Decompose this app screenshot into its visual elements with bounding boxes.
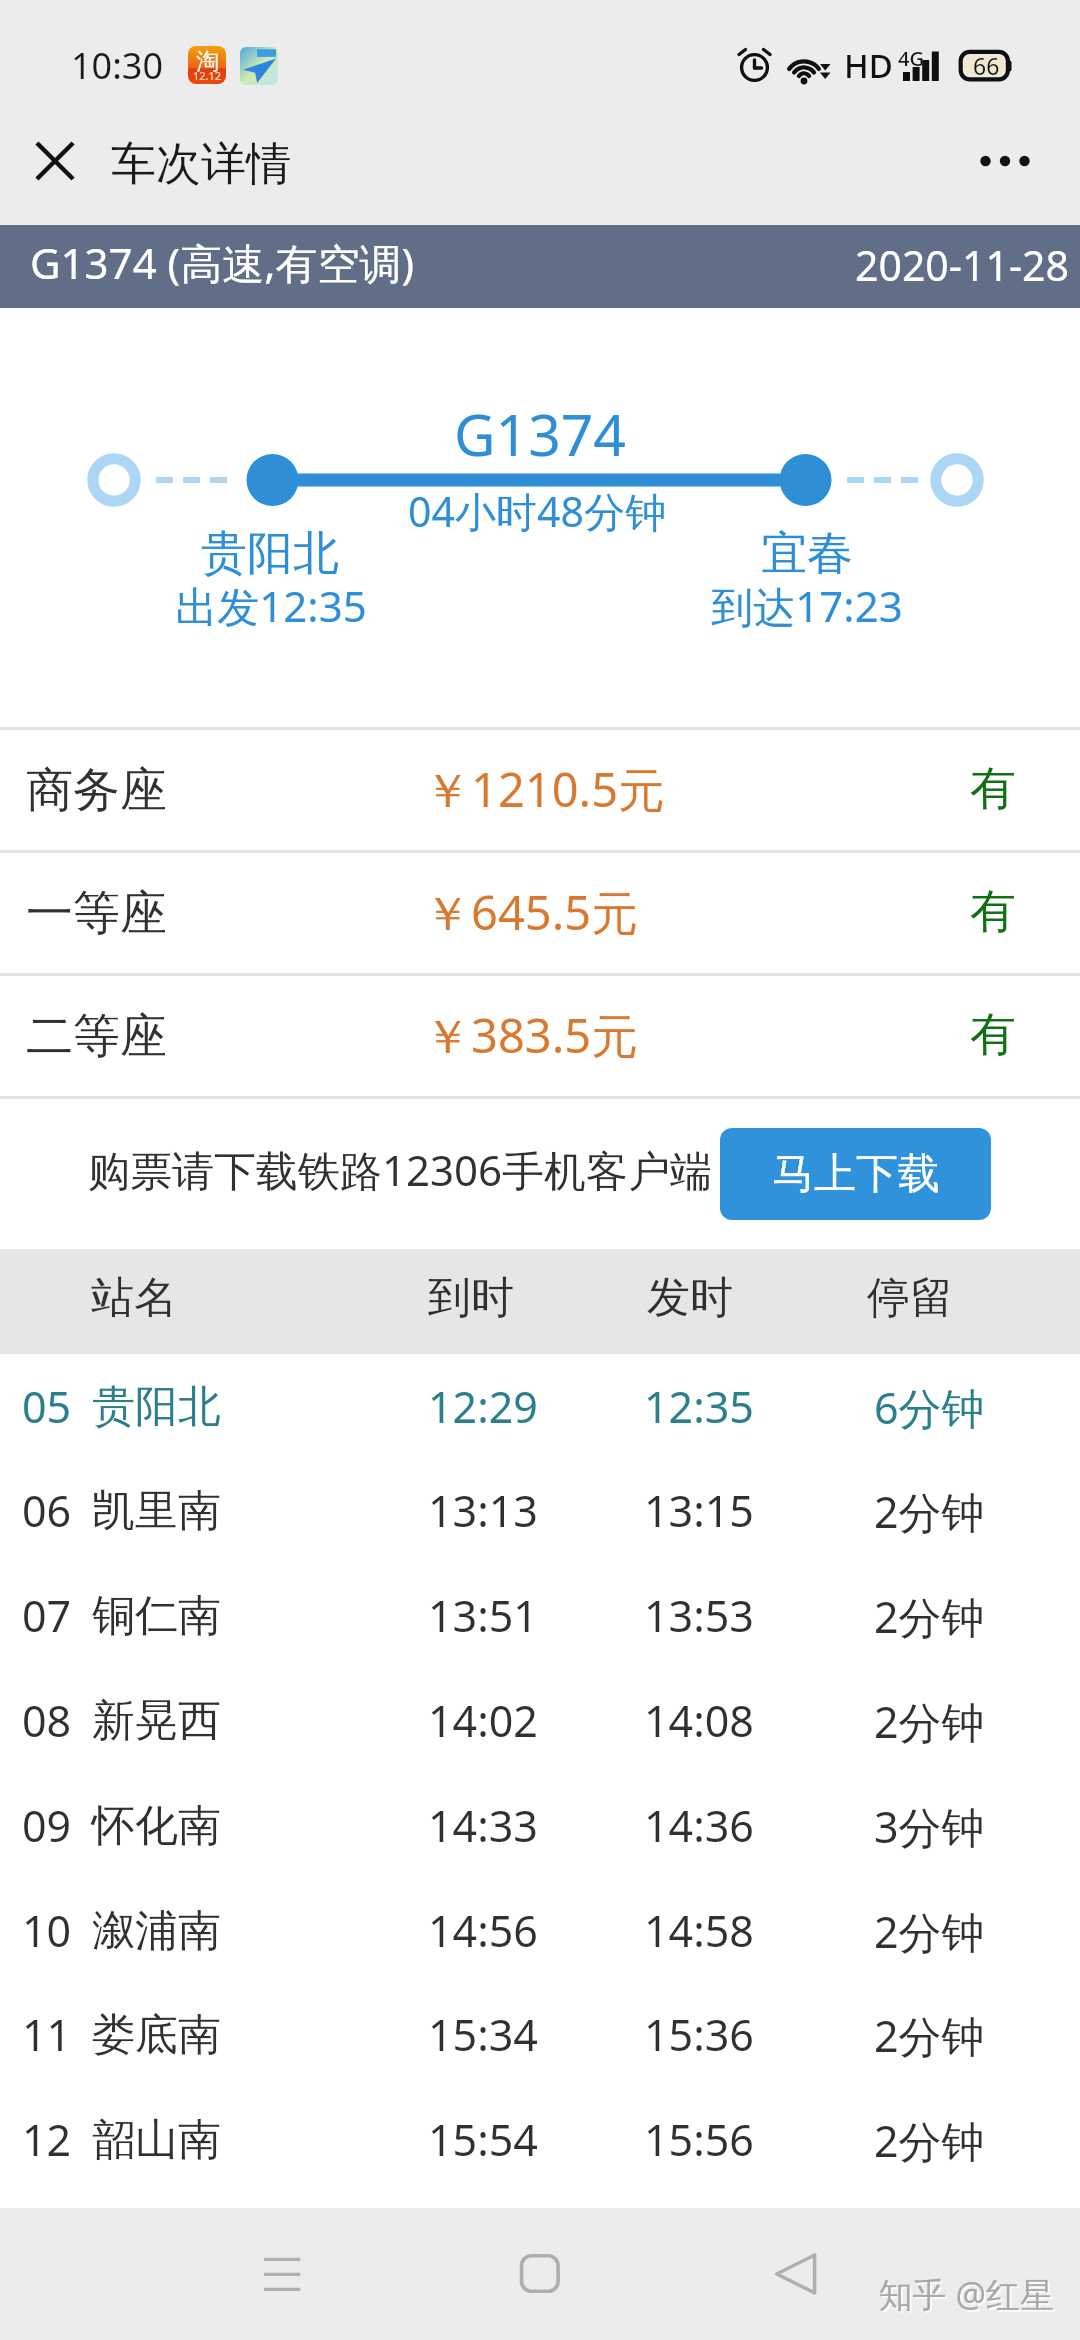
button[interactable]: 11: [0, 1982, 1080, 2087]
staticText: 贵阳北: [0, 525, 670, 583]
staticText: 二等座: [26, 1007, 167, 1066]
staticText: 淘: [196, 47, 219, 76]
staticText: 凯里南: [92, 1484, 221, 1538]
button[interactable]: 一等座: [0, 850, 1080, 973]
staticText: 车次详情: [111, 136, 291, 193]
staticText: 一等座: [26, 884, 167, 943]
staticText: 有: [516, 1006, 1016, 1064]
staticText: 2分钟: [874, 1482, 985, 1541]
staticText: 有: [516, 760, 1016, 818]
button[interactable]: 06: [0, 1458, 1080, 1563]
staticText: 13:13: [428, 1481, 538, 1540]
button[interactable]: Close: [13, 119, 97, 203]
staticText: 12: [22, 2110, 72, 2169]
staticText: 韶山南: [92, 2113, 221, 2167]
staticText: 有: [516, 883, 1016, 941]
staticText: 13:15: [644, 1481, 754, 1540]
staticText: 14:58: [644, 1901, 754, 1960]
staticText: 停留: [867, 1271, 953, 1325]
button[interactable]: 05: [0, 1354, 1080, 1459]
staticText: 15:36: [644, 2005, 754, 2064]
staticText: 15:34: [428, 2005, 538, 2064]
staticText: 知乎 @红星: [554, 2271, 1054, 2317]
staticText: 12.12: [193, 68, 222, 83]
staticText: 15:56: [644, 2110, 754, 2169]
staticText: 11: [22, 2005, 72, 2064]
staticText: 13:51: [428, 1586, 538, 1645]
staticText: 05: [22, 1377, 72, 1436]
staticText: ￥383.5元: [424, 1003, 639, 1067]
staticText: 新晃西: [92, 1694, 221, 1748]
button[interactable]: 马上下载: [720, 1128, 991, 1220]
staticText: 2分钟: [874, 1587, 985, 1646]
staticText: 13:53: [644, 1586, 754, 1645]
staticText: 04小时48分钟: [137, 483, 937, 539]
staticText: 宜春: [407, 525, 1080, 583]
staticText: 6分钟: [874, 1378, 985, 1437]
staticText: 09: [22, 1796, 72, 1855]
staticText: 2分钟: [874, 1902, 985, 1961]
staticText: 到达17:23: [407, 577, 1080, 634]
staticText: 怀化南: [92, 1799, 221, 1853]
staticText: 06: [22, 1481, 72, 1540]
staticText: 到时: [428, 1271, 514, 1325]
button[interactable]: 08: [0, 1668, 1080, 1773]
button[interactable]: More options: [955, 118, 1055, 204]
staticText: 2分钟: [874, 1692, 985, 1751]
staticText: 14:36: [644, 1796, 754, 1855]
staticText: 14:02: [428, 1691, 538, 1750]
staticText: 铜仁南: [92, 1589, 221, 1643]
staticText: G1374 (高速,有空调): [30, 234, 415, 291]
staticText: ￥645.5元: [424, 880, 639, 944]
staticText: 站名: [91, 1271, 177, 1325]
staticText: ￥1210.5元: [424, 757, 666, 821]
staticText: 3分钟: [874, 1797, 985, 1856]
staticText: 商务座: [26, 761, 167, 820]
staticText: 2分钟: [874, 2111, 985, 2170]
staticText: 14:08: [644, 1691, 754, 1750]
button[interactable]: 09: [0, 1773, 1080, 1878]
staticText: 2020-11-28: [569, 237, 1069, 293]
button[interactable]: 商务座: [0, 727, 1080, 850]
button[interactable]: 07: [0, 1563, 1080, 1668]
staticText: 出发12:35: [0, 577, 671, 634]
staticText: 2分钟: [874, 2006, 985, 2065]
staticText: 10:30: [71, 41, 164, 90]
staticText: 知乎 @红星: [556, 2273, 1056, 2319]
staticText: 66: [973, 50, 1000, 81]
staticText: 娄底南: [92, 2008, 221, 2062]
staticText: 14:56: [428, 1901, 538, 1960]
staticText: 08: [22, 1691, 72, 1750]
staticText: 马上下载: [772, 1148, 940, 1201]
button[interactable]: Recent apps: [234, 2224, 334, 2324]
staticText: 14:33: [428, 1796, 538, 1855]
staticText: 15:54: [428, 2110, 538, 2169]
staticText: 10: [22, 1901, 72, 1960]
staticText: HD: [844, 43, 893, 88]
button[interactable]: Home: [490, 2224, 590, 2324]
button[interactable]: Back: [746, 2224, 846, 2324]
button[interactable]: 10: [0, 1878, 1080, 1983]
staticText: 12:35: [644, 1377, 754, 1436]
staticText: 12:29: [428, 1377, 538, 1436]
staticText: 发时: [647, 1271, 733, 1325]
staticText: 溆浦南: [92, 1904, 221, 1958]
button[interactable]: 12: [0, 2087, 1080, 2192]
staticText: 购票请下载铁路12306手机客户端: [88, 1141, 713, 1198]
staticText: 贵阳北: [92, 1380, 221, 1434]
staticText: G1374: [140, 395, 940, 473]
staticText: 07: [22, 1586, 72, 1645]
staticText: 4G: [898, 45, 924, 72]
button[interactable]: 二等座: [0, 973, 1080, 1096]
